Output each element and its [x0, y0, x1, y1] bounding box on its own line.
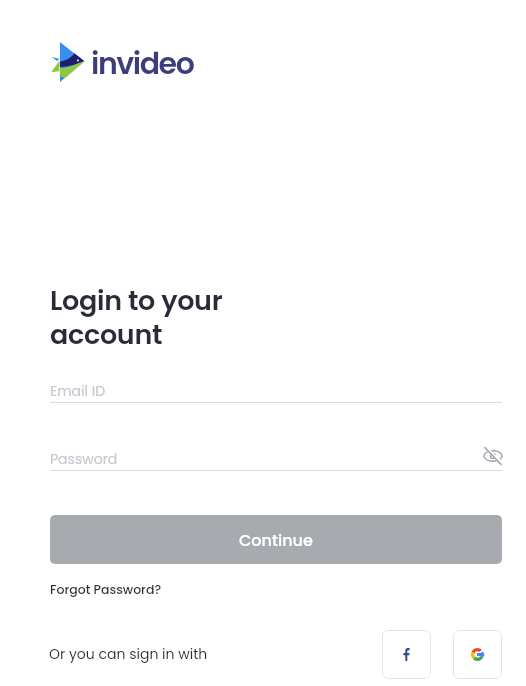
staticText: Continue [239, 529, 313, 551]
staticText: invideo [91, 43, 194, 85]
button[interactable]: Sign in with Facebook [382, 630, 431, 679]
button[interactable]: Sign in with Google [453, 630, 502, 679]
button[interactable]: Show password [481, 444, 505, 468]
staticText: Password [50, 449, 118, 469]
staticText: Email ID [50, 381, 106, 401]
button[interactable]: Password [50, 449, 502, 471]
staticText: Or you can sign in with [49, 644, 208, 664]
button[interactable]: Forgot Password? [50, 581, 162, 598]
button[interactable]: Continue [50, 515, 502, 564]
staticText: Forgot Password? [50, 581, 162, 598]
staticText: Login to your account [50, 282, 223, 353]
button[interactable]: Email ID [50, 381, 502, 403]
